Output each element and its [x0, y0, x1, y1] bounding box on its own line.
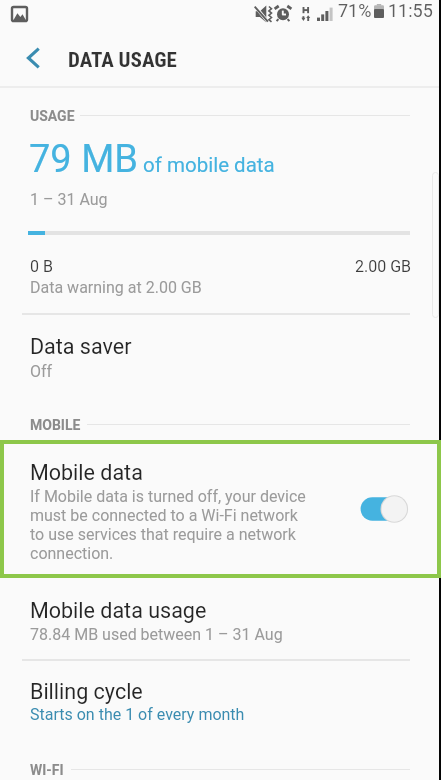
button[interactable]: Mobile data usage: [0, 586, 441, 652]
staticText: 11:55: [388, 0, 433, 21]
staticText: DATA USAGE: [68, 48, 177, 73]
button[interactable]: Mobile data on: [350, 489, 416, 529]
staticText: MOBILE: [30, 417, 81, 433]
staticText: Starts on the 1 of every month: [30, 705, 245, 724]
button[interactable]: Data saver: [0, 323, 441, 387]
button[interactable]: Billing cycle: [0, 672, 441, 738]
staticText: 78.84 MB used between 1 – 31 Aug: [30, 625, 283, 644]
staticText: Off: [30, 362, 53, 381]
staticText: 71%: [338, 0, 372, 21]
staticText: 1 – 31 Aug: [30, 190, 108, 209]
staticText: If Mobile data is turned off, your devic…: [30, 487, 306, 563]
staticText: 2.00 GB: [355, 257, 412, 276]
staticText: WI-FI: [30, 762, 64, 778]
staticText: Data warning at 2.00 GB: [30, 278, 202, 297]
staticText: 0 B: [30, 257, 53, 276]
staticText: USAGE: [30, 108, 75, 124]
staticText: 79 MB of mobile data: [29, 137, 275, 182]
button[interactable]: Mobile data: [0, 444, 435, 574]
staticText: Mobile data usage: [30, 598, 207, 623]
button[interactable]: Navigate up: [5, 30, 61, 86]
staticText: Mobile data: [30, 460, 143, 485]
staticText: Data saver: [30, 334, 132, 359]
staticText: Billing cycle: [30, 679, 143, 704]
